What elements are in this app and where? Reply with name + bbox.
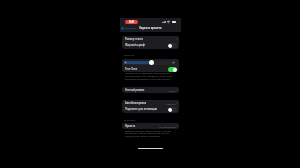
button[interactable]: Яркость <box>122 59 179 66</box>
button[interactable]: Поднятие для активации <box>122 106 179 112</box>
staticText: Выберите вид для экрана «Домой» и экрана <box>125 130 172 133</box>
staticText: Поднятие для активации <box>125 107 158 111</box>
button[interactable]: Ночной режим <box>122 87 179 93</box>
button[interactable]: Выключить <box>168 67 177 72</box>
staticText: условиям внешнего освещения, чтобы цвета <box>125 75 173 78</box>
staticText: Экран и яркость <box>139 26 162 30</box>
staticText: Жирный шрифт <box>125 43 146 47</box>
staticText: ДИСПЛЕЙ <box>124 119 136 122</box>
staticText: Автоблокировка <box>125 101 147 105</box>
button[interactable]: Яркость <box>122 123 179 129</box>
button[interactable]: Жирный шрифт <box>122 42 179 48</box>
staticText: Автоматически адаптирует цвета дисплея к <box>125 72 171 75</box>
staticText: выглядели одинаково в любой обстановке. <box>125 78 171 81</box>
staticText: Размер текста <box>125 37 144 41</box>
staticText: По умолчанию <box>159 125 176 128</box>
staticText: Выкл. <box>169 89 176 92</box>
staticText: ЯРКОСТЬ <box>124 54 135 57</box>
button[interactable]: Автоблокировка <box>122 100 179 106</box>
staticText: 1 минута <box>165 102 176 105</box>
button[interactable]: Настройки <box>121 26 136 31</box>
staticText: True Tone <box>125 67 138 71</box>
button[interactable]: Включить <box>168 107 177 112</box>
staticText: Ночной режим <box>125 88 145 92</box>
staticText: блокировки. Тёмное оформление отлично <box>125 132 170 135</box>
button[interactable]: Размер текста <box>122 36 179 42</box>
staticText: подходит для слабого освещения. <box>125 135 161 138</box>
staticText: Яркость <box>125 124 136 128</box>
button[interactable]: Включить <box>168 43 177 48</box>
staticText: Настройки <box>124 27 136 30</box>
staticText: 9:41 <box>129 20 135 24</box>
button[interactable]: True Tone <box>122 66 179 72</box>
